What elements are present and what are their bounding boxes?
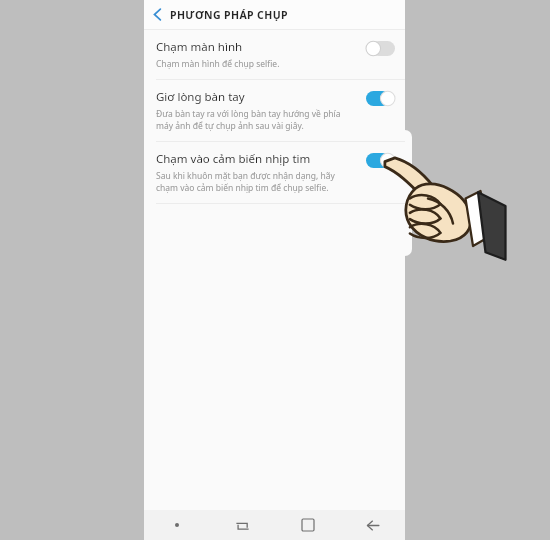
button[interactable]: Menu <box>144 523 210 527</box>
staticText: Chạm màn hình để chụp selfie. <box>156 58 280 70</box>
staticText: Đưa bàn tay ra với lòng bàn tay hướng về… <box>156 108 341 120</box>
button[interactable]: Recents <box>210 519 275 532</box>
staticText: máy ảnh để tự chụp ảnh sau vài giây. <box>156 120 304 132</box>
staticText: PHƯƠNG PHÁP CHỤP <box>170 8 288 22</box>
button[interactable]: Chạm vào cảm biến nhịp tim <box>144 142 405 203</box>
staticText: Sau khi khuôn mặt bạn được nhận dạng, hã… <box>156 170 335 182</box>
staticText: Giơ lòng bàn tay <box>156 89 245 105</box>
button[interactable]: Toggle Chạm vào cảm biến nhịp tim <box>366 153 395 168</box>
button[interactable]: Chạm màn hình <box>144 30 405 79</box>
button[interactable]: Giơ lòng bàn tay <box>144 80 405 141</box>
staticText: chạm vào cảm biến nhịp tim để chụp selfi… <box>156 182 329 194</box>
button[interactable]: Back <box>340 519 405 532</box>
button[interactable]: Back <box>144 0 170 29</box>
staticText: Chạm màn hình <box>156 39 243 55</box>
button[interactable]: Home <box>275 519 340 531</box>
staticText: Chạm vào cảm biến nhịp tim <box>156 151 311 167</box>
button[interactable]: Toggle Chạm màn hình <box>366 41 395 56</box>
button[interactable]: Toggle Giơ lòng bàn tay <box>366 91 395 106</box>
